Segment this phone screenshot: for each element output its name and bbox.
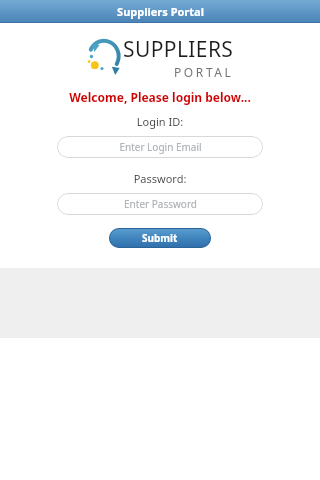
staticText: Enter Password <box>124 197 197 211</box>
other: Suppliers Portal logo <box>86 40 120 76</box>
staticText: Welcome, Please login below... <box>0 89 320 105</box>
staticText: SUPPLIERS <box>123 35 234 64</box>
staticText: PORTAL <box>174 64 234 80</box>
button[interactable]: Enter Password <box>57 193 263 215</box>
staticText: Login ID: <box>0 114 320 129</box>
staticText: Suppliers Portal <box>117 4 204 19</box>
staticText: Submit <box>142 231 178 245</box>
staticText: Password: <box>0 171 320 186</box>
staticText: Enter Login Email <box>119 140 202 154</box>
button[interactable]: Submit <box>109 228 211 248</box>
button[interactable]: Enter Login Email <box>57 136 263 158</box>
